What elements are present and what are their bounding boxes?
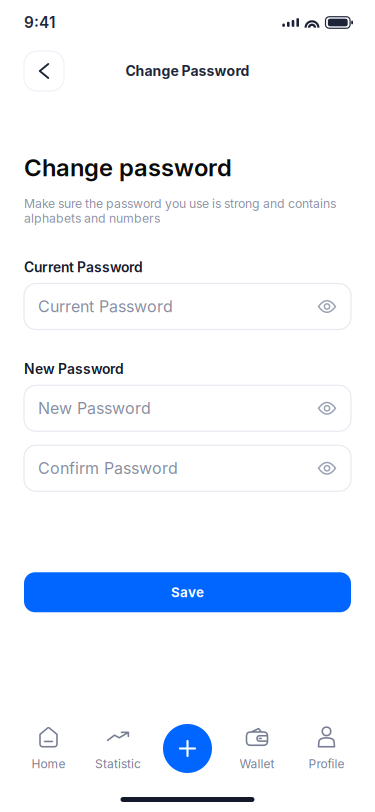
button[interactable]: Show Current Password bbox=[314, 293, 340, 319]
staticText: Home bbox=[31, 757, 65, 771]
staticText: Confirm Password bbox=[38, 459, 178, 478]
button[interactable]: Statistic bbox=[83, 726, 153, 771]
staticText: Current Password bbox=[24, 259, 143, 275]
button[interactable]: Show Confirm Password bbox=[314, 455, 340, 481]
button[interactable]: Save bbox=[24, 572, 351, 612]
staticText: Save bbox=[171, 584, 204, 600]
staticText: Change password bbox=[24, 153, 232, 182]
staticText: Change Password bbox=[125, 62, 249, 79]
button[interactable]: Back bbox=[24, 51, 64, 91]
staticText: Profile bbox=[308, 757, 344, 771]
staticText: Statistic bbox=[95, 757, 141, 771]
button[interactable]: Home bbox=[14, 726, 83, 771]
staticText: 9:41 bbox=[24, 13, 55, 32]
staticText: Current Password bbox=[38, 297, 173, 316]
staticText: Make sure the password you use is strong… bbox=[24, 196, 336, 226]
staticText: New Password bbox=[38, 399, 151, 418]
button[interactable]: Add bbox=[163, 724, 212, 773]
staticText: Wallet bbox=[239, 757, 274, 771]
button[interactable]: Wallet bbox=[222, 726, 292, 771]
button[interactable]: Profile bbox=[292, 726, 361, 771]
staticText: New Password bbox=[24, 360, 124, 377]
button[interactable]: Show New Password bbox=[314, 395, 340, 421]
